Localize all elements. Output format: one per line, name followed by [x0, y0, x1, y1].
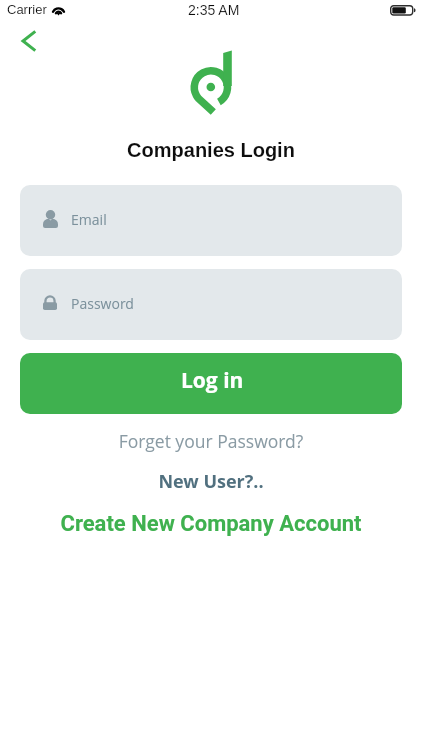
staticText: Log in	[181, 366, 244, 395]
button[interactable]: Forget your Password?	[0, 429, 422, 455]
staticText: Password	[71, 294, 134, 313]
button[interactable]: Email	[20, 185, 402, 256]
button[interactable]: Password	[20, 269, 402, 340]
staticText: Forget your Password?	[0, 429, 422, 453]
button[interactable]: Log in	[20, 353, 402, 414]
button[interactable]: Back	[14, 26, 44, 56]
staticText: Carrier	[7, 2, 47, 17]
staticText: Email	[71, 210, 107, 229]
button[interactable]: Create New Company Account	[0, 511, 422, 539]
staticText: 2:35 AM	[188, 2, 240, 18]
staticText: New User?..	[0, 469, 422, 494]
staticText: Companies Login	[0, 139, 422, 161]
staticText: Create New Company Account	[0, 511, 422, 537]
